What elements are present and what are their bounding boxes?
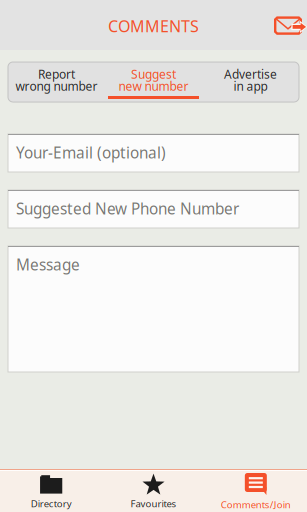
staticText: Your-Email (optional) [16,142,166,163]
staticText: new number [118,78,188,94]
button[interactable]: Favourites [102,474,205,510]
staticText: Advertise [224,66,277,82]
button[interactable]: Suggest [105,62,202,102]
staticText: COMMENTS [108,15,199,37]
staticText: Message [16,254,80,275]
staticText: wrong number [15,78,97,94]
staticText: Comments/Join [221,498,291,511]
button[interactable]: Report [8,62,105,102]
staticText: in app [233,78,267,94]
button[interactable]: Your-Email (optional) [8,134,299,172]
button[interactable]: Directory [0,474,102,510]
staticText: Favourites [130,497,176,510]
staticText: Suggest [131,66,176,82]
staticText: Report [38,66,75,82]
button[interactable]: Suggested New Phone Number [8,190,299,228]
button[interactable]: Comments/Join [205,473,307,511]
staticText: Suggested New Phone Number [16,198,239,219]
button[interactable]: Send comment [274,8,307,41]
staticText: Directory [31,497,72,510]
button[interactable]: Advertise [202,62,299,102]
button[interactable]: Message [8,246,299,372]
